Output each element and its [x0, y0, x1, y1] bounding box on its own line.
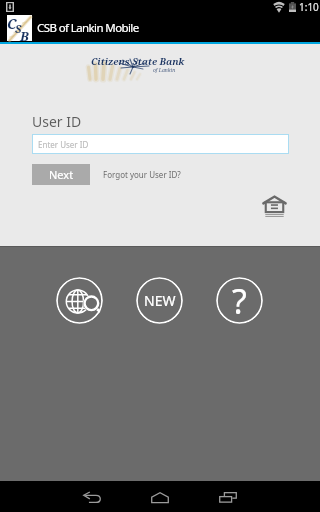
- button[interactable]: Enter User ID: [32, 134, 289, 154]
- staticText: User ID: [32, 112, 82, 131]
- button[interactable]: Home: [128, 483, 192, 512]
- staticText: S: [15, 21, 22, 36]
- button[interactable]: Recent apps: [196, 483, 260, 512]
- button[interactable]: Help: [216, 277, 263, 324]
- staticText: Citizens State Bank: [91, 55, 185, 68]
- button[interactable]: Back: [60, 483, 124, 512]
- staticText: NEW: [144, 291, 176, 310]
- button[interactable]: Next: [32, 164, 90, 185]
- staticText: Next: [49, 167, 74, 182]
- button[interactable]: What's new: [136, 277, 183, 324]
- staticText: CSB of Lankin Mobile: [37, 20, 139, 36]
- staticText: B: [20, 27, 29, 45]
- button[interactable]: Forgot your User ID?: [99, 164, 185, 185]
- staticText: 1:10: [299, 0, 319, 14]
- staticText: Forgot your User ID?: [103, 169, 181, 180]
- staticText: C: [7, 14, 17, 33]
- staticText: Enter User ID: [38, 139, 89, 150]
- button[interactable]: Find a location: [56, 277, 103, 324]
- staticText: of Lankin: [153, 67, 176, 74]
- button[interactable]: C: [0, 14, 320, 42]
- staticText: ?: [232, 278, 247, 324]
